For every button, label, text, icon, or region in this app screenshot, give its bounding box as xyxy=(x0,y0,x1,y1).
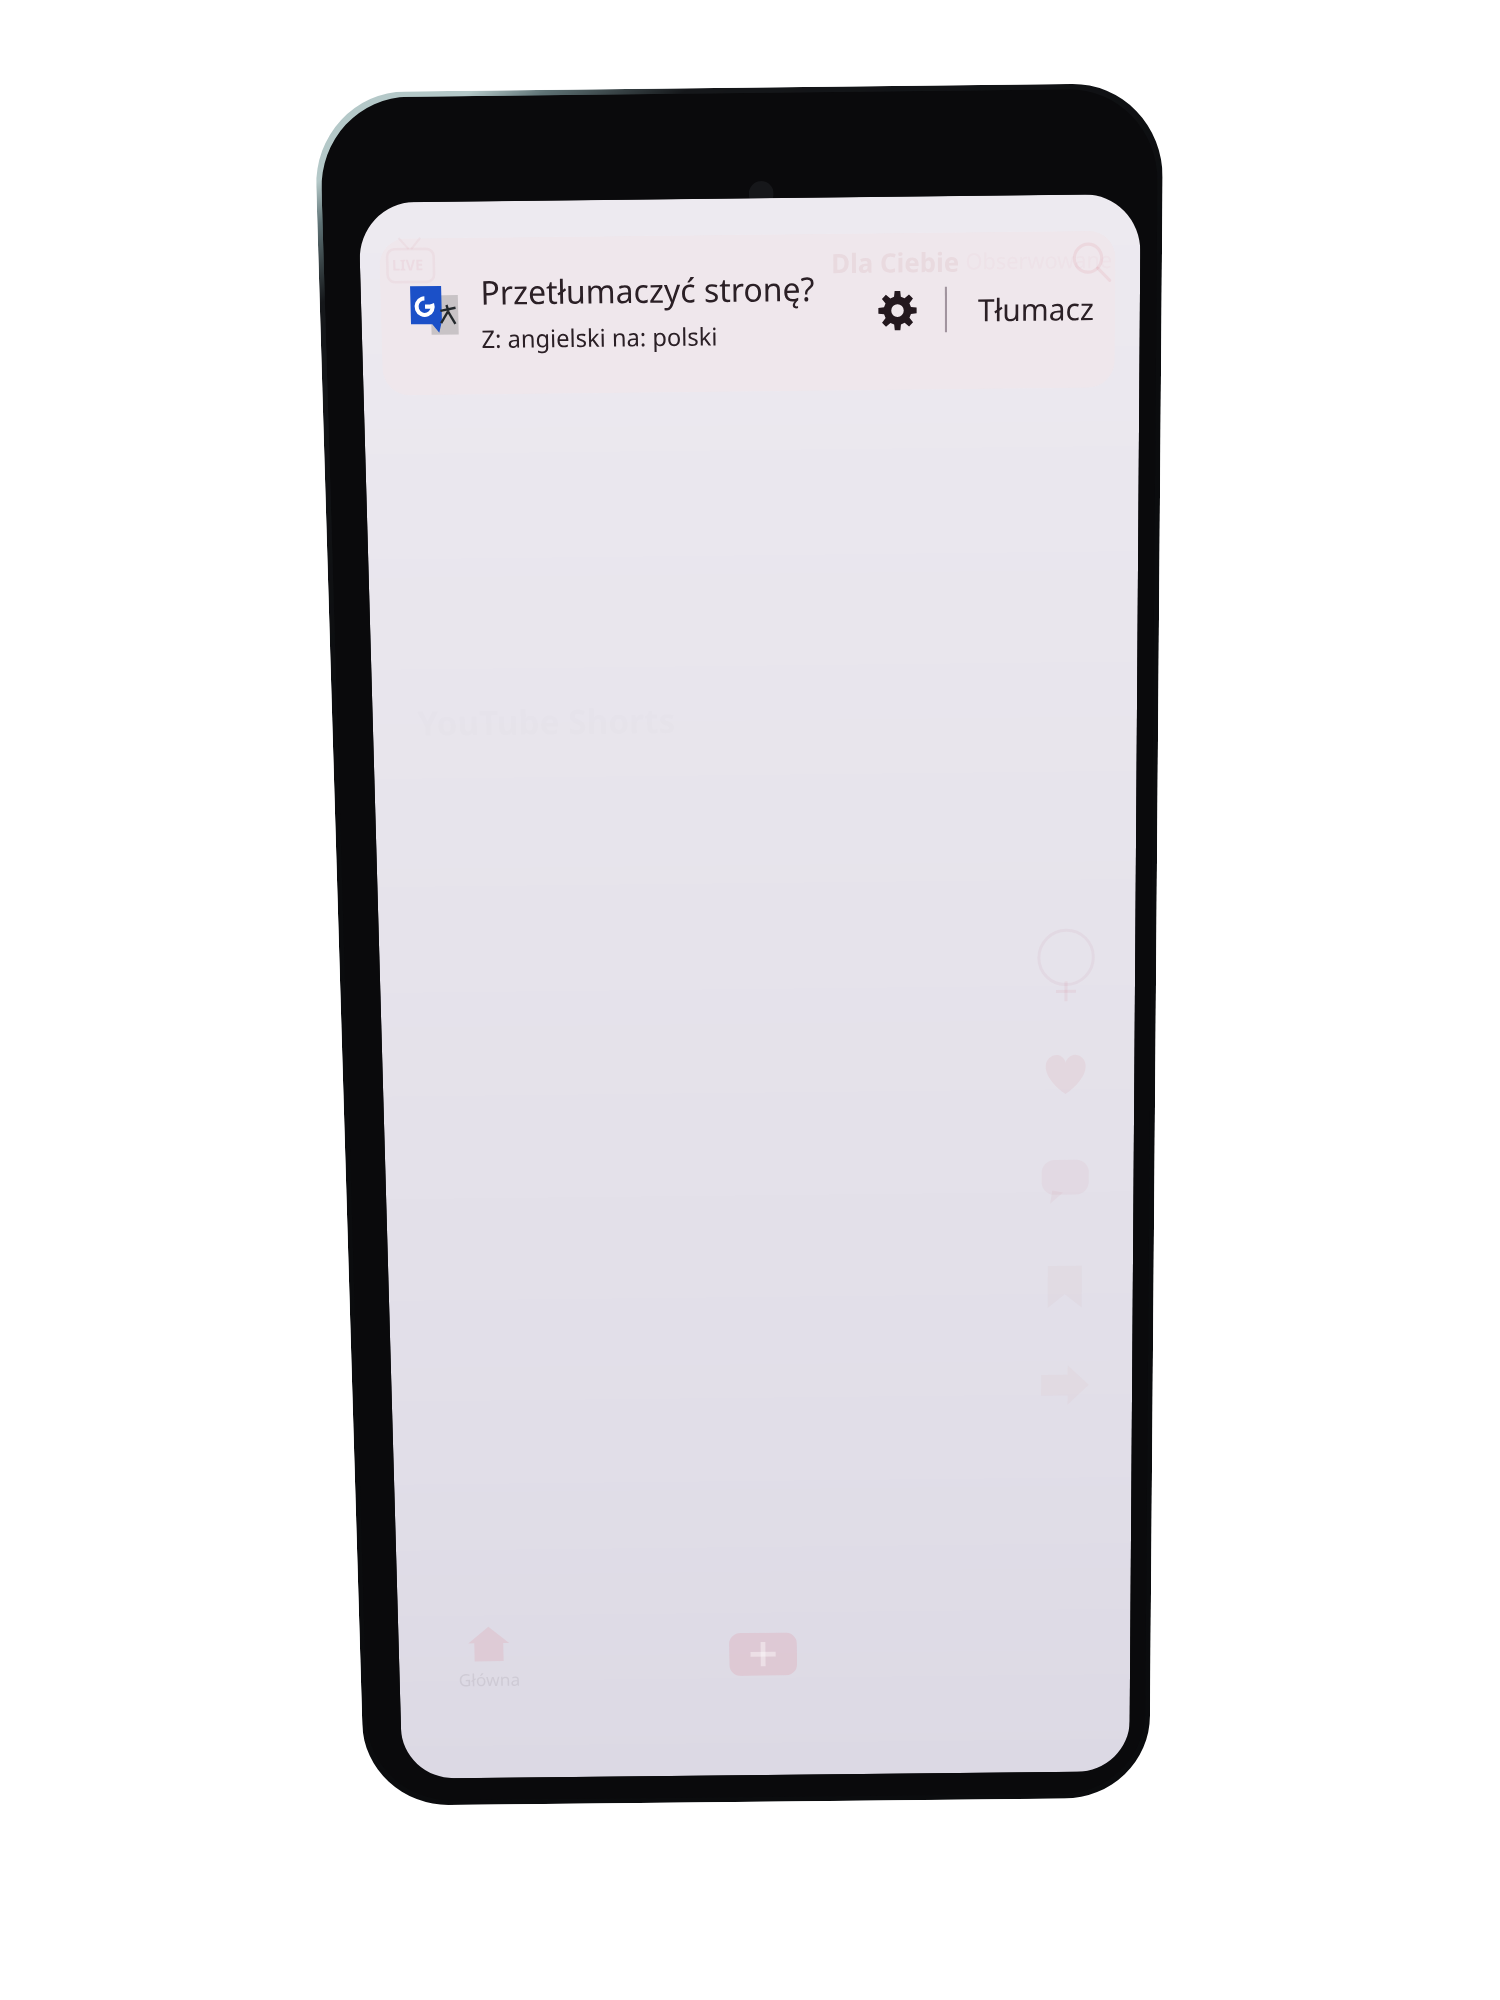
staticText: Przetłumaczyć stronę? xyxy=(480,266,815,314)
button[interactable]: Comments xyxy=(1038,1153,1092,1207)
button[interactable]: Like xyxy=(1039,1047,1093,1101)
button[interactable]: Translation settings xyxy=(877,289,918,332)
button[interactable]: Obserwowane xyxy=(965,244,1112,277)
button[interactable]: Live xyxy=(384,236,437,290)
staticText: Dla Ciebie xyxy=(831,243,959,281)
staticText: Główna xyxy=(458,1668,521,1692)
staticText: Obserwowane xyxy=(965,244,1112,277)
button[interactable]: Przetłumaczyć stronę? xyxy=(379,231,1116,395)
staticText: Tłumacz xyxy=(978,287,1095,330)
button[interactable]: Search xyxy=(1069,239,1114,286)
button[interactable]: Główna xyxy=(435,1623,543,1692)
button[interactable]: Follow xyxy=(1032,931,1100,1000)
staticText: LIVE xyxy=(392,254,424,275)
button[interactable]: Create xyxy=(729,1632,797,1676)
staticText: Z: angielski na: polski xyxy=(481,319,718,354)
button[interactable]: Dla Ciebie xyxy=(831,243,959,281)
button[interactable]: Tłumacz xyxy=(965,267,1106,349)
